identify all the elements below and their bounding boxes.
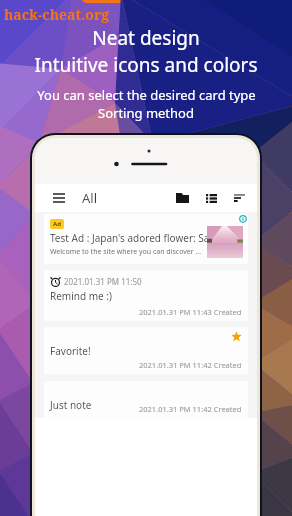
staticText: Favorite!	[50, 344, 91, 358]
staticText: All	[82, 189, 98, 207]
button[interactable]: Folders	[169, 185, 195, 211]
staticText: Welcome to the site where you can discov…	[50, 247, 202, 257]
staticText: Intuitive icons and colors	[34, 52, 258, 78]
button[interactable]: Ad	[44, 214, 248, 264]
button[interactable]: View list	[198, 185, 224, 211]
button[interactable]: 2021.01.31 PM 11:50	[44, 270, 248, 321]
button[interactable]: Menu	[45, 184, 73, 212]
staticText: Test Ad : Japan's adored flower: Sak…	[50, 231, 223, 245]
staticText: Neat design	[92, 25, 200, 51]
staticText: hack-cheat.org	[4, 5, 110, 24]
staticText: Sorting method	[98, 104, 194, 122]
staticText: 2021.01.31 PM 11:50	[64, 276, 142, 287]
staticText: 2021.01.31 PM 11:42 Created	[139, 404, 242, 414]
staticText: 2021.01.31 PM 11:42 Created	[139, 360, 242, 370]
staticText: 2021.01.31 PM 11:43 Created	[139, 307, 242, 317]
button[interactable]: Just note	[44, 381, 248, 418]
staticText: Remind me :)	[50, 289, 112, 303]
staticText: Ad	[53, 220, 61, 228]
staticText: You can select the desired card type	[37, 86, 256, 104]
staticText: Just note	[50, 398, 92, 412]
button[interactable]: Favorite!	[44, 327, 248, 374]
button[interactable]: Sort	[226, 185, 252, 211]
